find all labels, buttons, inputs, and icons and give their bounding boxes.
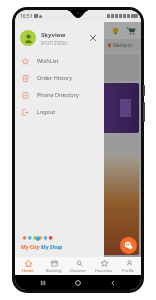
staticText: Logout	[37, 108, 56, 115]
staticText: My Shop	[41, 244, 63, 251]
button[interactable]: Profile	[116, 257, 141, 275]
button[interactable]: Chat support	[120, 237, 137, 254]
staticText: Mainpuri	[113, 42, 133, 48]
button[interactable]	[104, 22, 141, 257]
staticText: Skyview	[41, 31, 66, 39]
staticText: WishList	[37, 57, 59, 64]
staticText: Discover	[70, 268, 87, 273]
button[interactable]: Logout	[15, 103, 104, 120]
button[interactable]: Discover	[66, 257, 91, 275]
staticText: Favorites	[95, 268, 113, 273]
staticText: Profile	[122, 268, 135, 273]
staticText: 9107125000	[41, 40, 67, 46]
button[interactable]: Phone Directory	[15, 86, 104, 103]
other: Offers	[111, 27, 120, 36]
button[interactable]: Recents	[36, 276, 50, 290]
button[interactable]: Home	[15, 257, 41, 275]
button[interactable]: Home	[71, 276, 85, 290]
button[interactable]: My City	[21, 235, 63, 251]
button[interactable]: Close drawer	[87, 32, 99, 44]
other: Cart	[126, 26, 136, 36]
button[interactable]: Skyview	[15, 26, 104, 50]
staticText: Phone Directory	[37, 91, 79, 98]
button[interactable]: Back	[106, 276, 120, 290]
button[interactable]: Order History	[15, 69, 104, 86]
staticText: Order History	[37, 74, 73, 81]
staticText: Home	[22, 268, 34, 273]
staticText: Booking	[46, 268, 62, 273]
staticText: My City	[21, 244, 40, 251]
button[interactable]: Favorites	[91, 257, 116, 275]
staticText: 10:51	[20, 13, 33, 20]
button[interactable]: WishList	[15, 52, 104, 69]
button[interactable]: Booking	[41, 257, 66, 275]
